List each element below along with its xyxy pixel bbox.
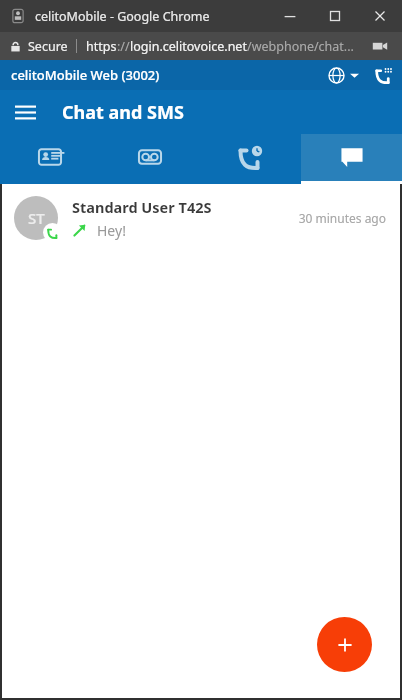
staticText: ST bbox=[28, 208, 45, 228]
button[interactable]: Menu bbox=[6, 93, 44, 131]
button[interactable]: Close bbox=[357, 0, 402, 32]
button[interactable]: Call history bbox=[200, 134, 301, 184]
staticText: login.celitovoice.net bbox=[130, 38, 247, 55]
staticText: celitoMobile Web (3002) bbox=[11, 66, 160, 84]
staticText: /webphone/chat... bbox=[247, 38, 354, 55]
button[interactable]: Voicemail bbox=[100, 134, 200, 184]
button[interactable]: ST bbox=[2, 184, 400, 252]
staticText: Standard User T42S bbox=[72, 197, 212, 217]
staticText: Secure bbox=[28, 38, 68, 55]
button[interactable]: Dial pad bbox=[372, 64, 394, 86]
staticText: 30 minutes ago bbox=[298, 210, 386, 226]
staticText: https bbox=[86, 38, 117, 55]
staticText: :// bbox=[117, 38, 130, 55]
staticText: celitoMobile - Google Chrome bbox=[35, 8, 210, 25]
button[interactable]: New message bbox=[317, 617, 372, 672]
staticText: Chat and SMS bbox=[62, 100, 184, 125]
button[interactable]: Chat and SMS bbox=[301, 134, 402, 184]
button[interactable]: Cast bbox=[370, 36, 390, 56]
button[interactable]: Maximize bbox=[312, 0, 357, 32]
button[interactable]: Contacts bbox=[0, 134, 100, 184]
button[interactable]: Minimize bbox=[267, 0, 312, 32]
staticText: Hey! bbox=[97, 221, 126, 240]
button[interactable]: Language bbox=[325, 67, 362, 84]
